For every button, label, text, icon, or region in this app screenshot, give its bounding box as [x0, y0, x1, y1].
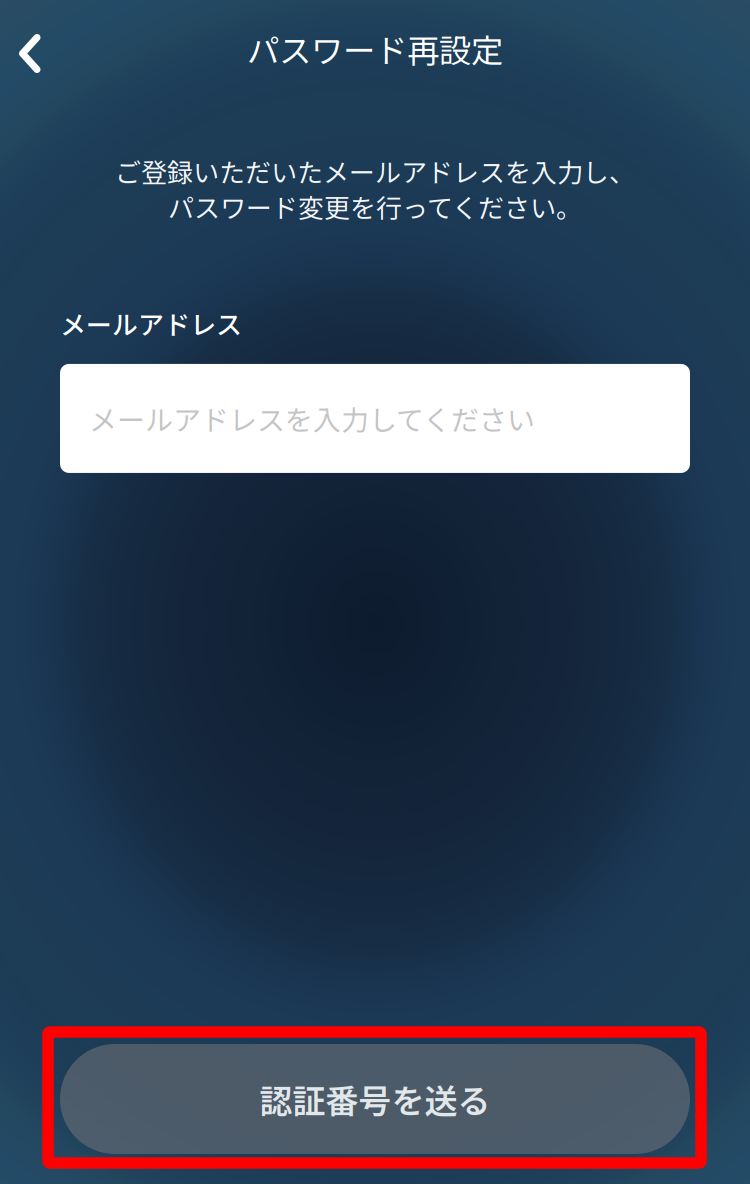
staticText: メールアドレスを入力してください — [89, 398, 535, 439]
staticText: 認証番号を送る — [259, 1075, 490, 1123]
staticText: ご登録いただいたメールアドレスを入力し、 — [115, 152, 635, 190]
staticText: メールアドレス — [60, 304, 242, 342]
button[interactable]: 戻る — [0, 3, 62, 93]
staticText: パスワード再設定 — [247, 25, 503, 72]
button[interactable]: 認証番号を送る — [60, 1044, 690, 1154]
staticText: パスワード変更を行ってください。 — [168, 188, 582, 225]
